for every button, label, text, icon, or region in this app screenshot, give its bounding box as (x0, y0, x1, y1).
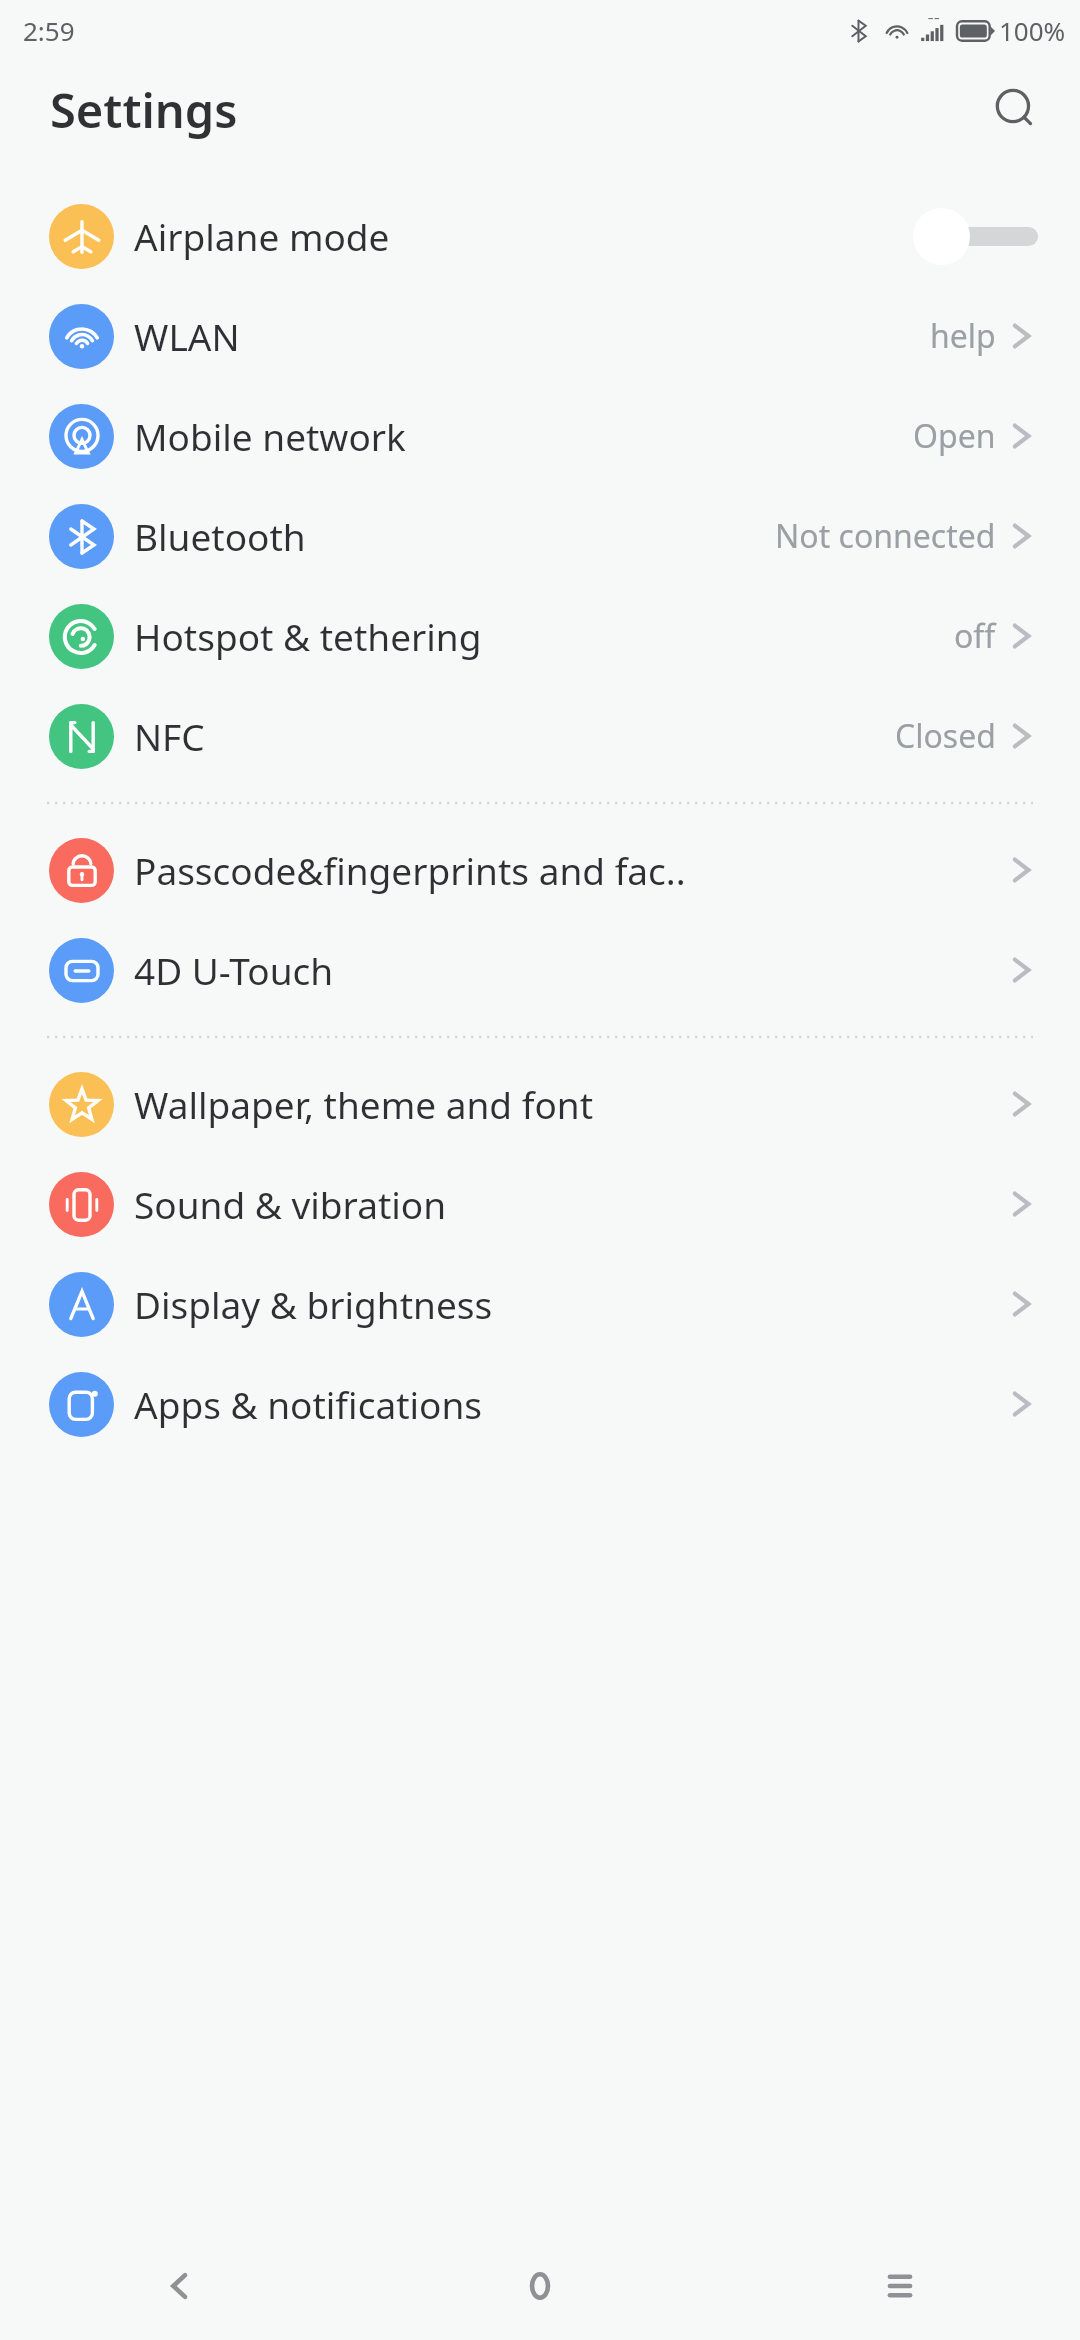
staticText: Apps & notifications (134, 1379, 1010, 1429)
staticText: Bluetooth (134, 511, 775, 561)
button[interactable]: Wallpaper, theme and font (0, 1054, 1080, 1154)
staticText: Settings (50, 78, 238, 142)
button[interactable]: Recents (720, 2232, 1080, 2340)
staticText: 100% (999, 13, 1066, 48)
staticText: 2:59 (23, 13, 75, 48)
staticText: 4D U-Touch (134, 945, 1010, 995)
staticText: Passcode&fingerprints and fac.. (134, 845, 1010, 895)
staticText: off (954, 614, 996, 658)
staticText: NFC (134, 711, 895, 761)
staticText: help (930, 314, 996, 358)
staticText: Display & brightness (134, 1279, 1010, 1329)
staticText: Not connected (775, 514, 996, 558)
staticText: Sound & vibration (134, 1179, 1010, 1229)
button[interactable]: Mobile network (0, 386, 1080, 486)
button[interactable]: NFC (0, 686, 1080, 786)
staticText: Hotspot & tethering (134, 611, 954, 661)
button[interactable]: Hotspot & tethering (0, 586, 1080, 686)
button[interactable]: Home (360, 2232, 720, 2340)
button[interactable]: Airplane mode (0, 186, 1080, 286)
button[interactable]: Apps & notifications (0, 1354, 1080, 1454)
button[interactable]: WLAN (0, 286, 1080, 386)
staticText: WLAN (134, 311, 930, 361)
button[interactable]: Back (0, 2232, 360, 2340)
button[interactable]: Bluetooth (0, 486, 1080, 586)
staticText: Open (913, 414, 996, 458)
staticText: Airplane mode (134, 211, 918, 261)
button[interactable]: Search (980, 74, 1052, 146)
button[interactable]: Display & brightness (0, 1254, 1080, 1354)
staticText: Wallpaper, theme and font (134, 1079, 1010, 1129)
button[interactable]: Sound & vibration (0, 1154, 1080, 1254)
staticText: Mobile network (134, 411, 913, 461)
staticText: Closed (895, 714, 996, 758)
button[interactable]: Passcode&fingerprints and fac.. (0, 820, 1080, 920)
button[interactable]: 4D U-Touch (0, 920, 1080, 1020)
button[interactable]: Airplane mode toggle (918, 186, 1053, 286)
